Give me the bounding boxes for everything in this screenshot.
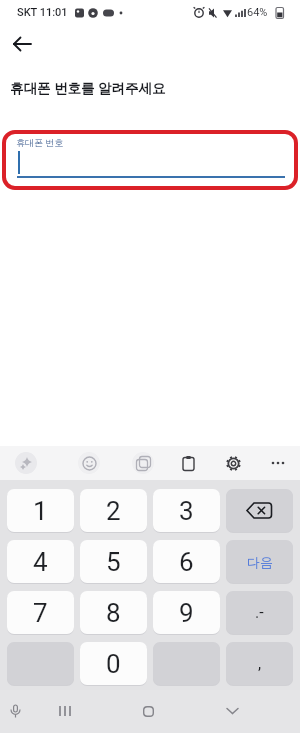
button[interactable] [54, 700, 76, 722]
button[interactable] [267, 452, 289, 474]
staticText: 4 [33, 547, 48, 577]
button[interactable]: 7 [7, 591, 74, 634]
button[interactable]: 8 [80, 591, 147, 634]
staticText: , [258, 654, 262, 673]
button[interactable] [4, 700, 26, 722]
staticText: 2 [106, 496, 121, 526]
button[interactable] [15, 452, 37, 474]
button[interactable]: .- [226, 591, 293, 634]
button[interactable]: 1 [7, 489, 74, 532]
staticText: 다음 [247, 554, 273, 570]
button[interactable] [132, 452, 154, 474]
button[interactable] [177, 452, 199, 474]
button[interactable]: 6 [153, 540, 220, 583]
button[interactable] [222, 452, 244, 474]
button[interactable] [221, 700, 243, 722]
staticText: .- [255, 603, 264, 622]
button[interactable]: 4 [7, 540, 74, 583]
staticText: SKT 11:01 [17, 6, 68, 19]
button[interactable]: 휴대폰 번호 [2, 130, 298, 190]
staticText: 7 [33, 598, 48, 628]
staticText: 휴대폰 번호 [16, 136, 64, 148]
staticText: 1 [33, 496, 48, 526]
staticText: 3 [179, 496, 194, 526]
staticText: 9 [179, 598, 194, 628]
staticText: 8 [106, 598, 121, 628]
staticText: 휴대폰 번호를 알려주세요 [10, 79, 166, 97]
button[interactable]: 2 [80, 489, 147, 532]
button[interactable]: 5 [80, 540, 147, 583]
button[interactable] [8, 30, 36, 58]
staticText: 5 [106, 547, 121, 577]
button[interactable] [137, 700, 159, 722]
staticText: 64% [247, 6, 268, 19]
button[interactable]: 9 [153, 591, 220, 634]
button[interactable]: 다음 [226, 540, 293, 583]
staticText: 0 [106, 649, 121, 679]
button[interactable] [226, 489, 293, 532]
button[interactable]: 3 [153, 489, 220, 532]
staticText: 6 [179, 547, 194, 577]
button[interactable]: 0 [80, 642, 147, 685]
button[interactable] [78, 452, 100, 474]
button[interactable]: , [226, 642, 293, 685]
